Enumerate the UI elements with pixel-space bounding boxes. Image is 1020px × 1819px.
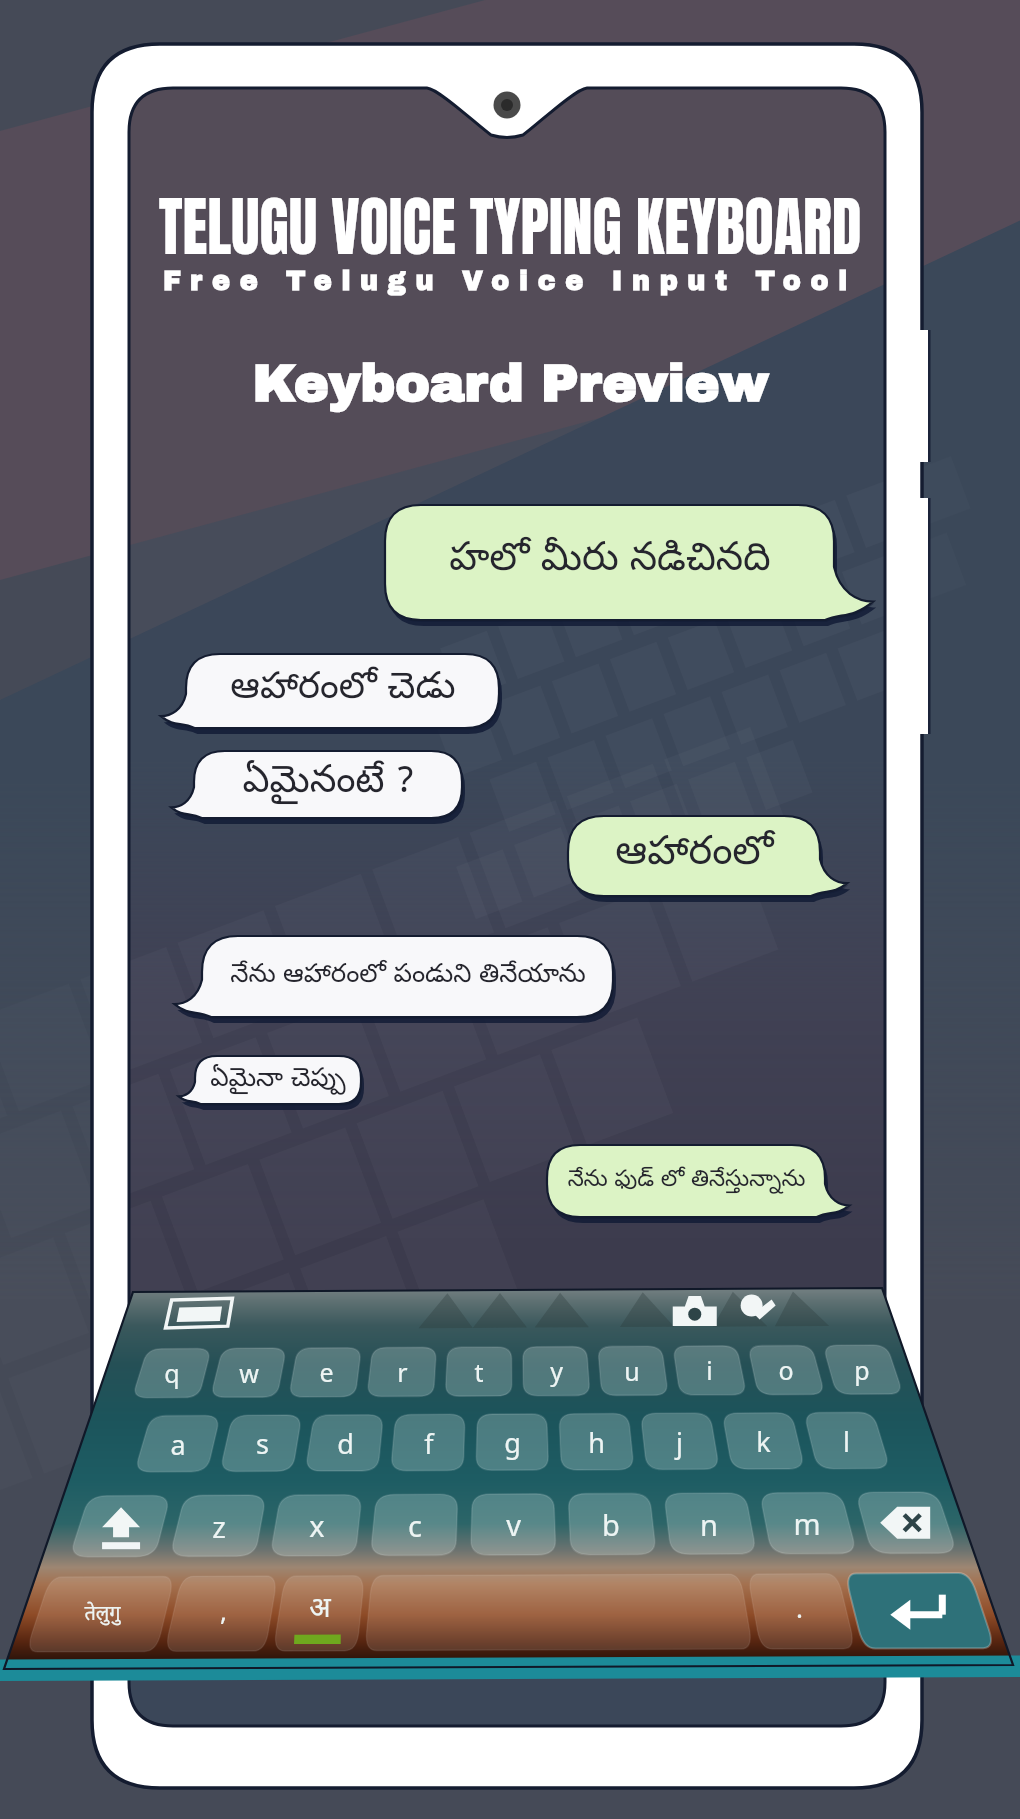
- staticText: TELUGU VOICE TYPING KEYBOARD: [158, 179, 861, 275]
- staticText: b: [602, 1505, 620, 1544]
- button[interactable]: n: [669, 1500, 749, 1548]
- button[interactable]: d: [305, 1419, 385, 1467]
- button[interactable]: z: [179, 1502, 259, 1550]
- staticText: h: [588, 1424, 605, 1461]
- button[interactable]: ఏమైనా చెప్పు: [195, 1056, 361, 1104]
- button[interactable]: నేను ఆహారంలో పండుని తినేయాను: [202, 936, 613, 1017]
- staticText: x: [309, 1506, 325, 1545]
- staticText: p: [854, 1353, 870, 1387]
- button[interactable]: ఏమైనంటే ?: [194, 751, 462, 818]
- staticText: .: [796, 1590, 803, 1625]
- button[interactable]: अ: [280, 1586, 360, 1634]
- button[interactable]: v: [473, 1500, 553, 1548]
- staticText: నేను ఆహారంలో పండుని తినేయాను: [230, 959, 586, 994]
- button[interactable]: q: [132, 1349, 212, 1397]
- button[interactable]: g: [472, 1418, 552, 1466]
- button[interactable]: a: [138, 1420, 218, 1468]
- staticText: హలో మీరు నడిచినది: [449, 536, 771, 589]
- staticText: f: [424, 1425, 434, 1462]
- button[interactable]: तेलुगु: [62, 1591, 142, 1639]
- staticText: u: [624, 1354, 640, 1388]
- staticText: e: [319, 1355, 334, 1389]
- staticText: l: [843, 1423, 850, 1460]
- staticText: m: [793, 1504, 821, 1543]
- button[interactable]: ఆహారంలో: [568, 816, 820, 896]
- staticText: ఏమైనంటే ?: [242, 759, 414, 810]
- staticText: अ: [309, 1592, 331, 1629]
- button[interactable]: e: [286, 1348, 366, 1396]
- button[interactable]: s: [222, 1419, 302, 1467]
- staticText: z: [212, 1507, 226, 1546]
- staticText: तेलुगु: [84, 1602, 121, 1628]
- staticText: ఆహారంలో చెడు: [230, 666, 456, 716]
- staticText: k: [756, 1423, 771, 1460]
- staticText: ఏమైనా చెప్పు: [210, 1063, 346, 1098]
- staticText: j: [676, 1424, 683, 1461]
- staticText: ,: [220, 1593, 227, 1628]
- staticText: d: [337, 1425, 354, 1462]
- button[interactable]: c: [375, 1501, 455, 1549]
- button[interactable]: j: [639, 1418, 719, 1466]
- staticText: s: [256, 1425, 269, 1462]
- button[interactable]: t: [439, 1348, 519, 1396]
- button[interactable]: x: [277, 1501, 357, 1549]
- staticText: w: [239, 1356, 259, 1390]
- button[interactable]: u: [592, 1347, 672, 1395]
- button[interactable]: నేను ఫుడ్ లో తినేస్తున్నాను: [547, 1145, 825, 1217]
- button[interactable]: f: [389, 1419, 469, 1467]
- button[interactable]: ,: [183, 1586, 263, 1634]
- staticText: q: [164, 1356, 180, 1390]
- staticText: r: [397, 1355, 408, 1389]
- button[interactable]: b: [571, 1500, 651, 1548]
- button[interactable]: r: [362, 1348, 442, 1396]
- button[interactable]: o: [746, 1346, 826, 1394]
- staticText: a: [170, 1426, 186, 1463]
- button[interactable]: l: [806, 1417, 886, 1465]
- button[interactable]: p: [822, 1346, 902, 1394]
- button[interactable]: .: [759, 1583, 839, 1631]
- staticText: g: [504, 1424, 521, 1461]
- button[interactable]: i: [669, 1346, 749, 1394]
- staticText: Keyboard Preview: [252, 355, 769, 412]
- button[interactable]: h: [556, 1418, 636, 1466]
- staticText: నేను ఫుడ్ లో తినేస్తున్నాను: [567, 1166, 806, 1197]
- staticText: Free Telugu Voice Input Tool: [163, 266, 857, 295]
- staticText: t: [474, 1355, 484, 1389]
- button[interactable]: k: [723, 1417, 803, 1465]
- button[interactable]: హలో మీరు నడిచినది: [385, 505, 834, 620]
- staticText: i: [706, 1353, 713, 1387]
- button[interactable]: y: [516, 1347, 596, 1395]
- staticText: y: [550, 1354, 563, 1388]
- staticText: o: [778, 1353, 794, 1387]
- button[interactable]: m: [767, 1499, 847, 1547]
- button[interactable]: w: [209, 1349, 289, 1397]
- staticText: v: [506, 1505, 521, 1544]
- staticText: ఆహారంలో: [615, 829, 774, 883]
- button[interactable]: ఆహారంలో చెడు: [186, 654, 499, 728]
- staticText: n: [700, 1505, 718, 1544]
- staticText: c: [408, 1506, 422, 1545]
